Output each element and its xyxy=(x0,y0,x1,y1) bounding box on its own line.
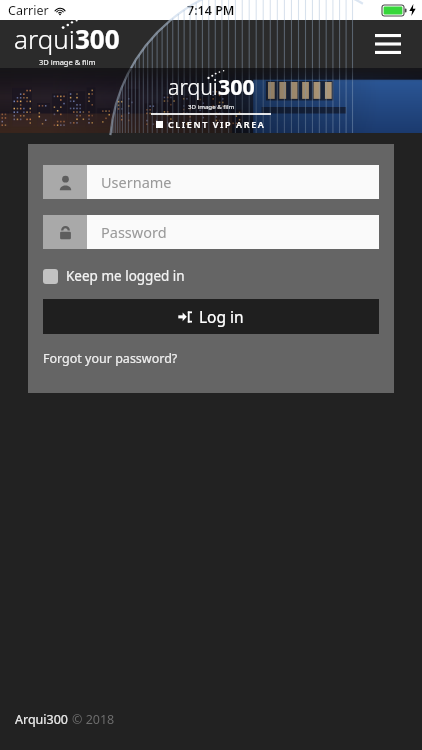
button[interactable]: Log in xyxy=(43,299,379,334)
staticText: 3D image & film xyxy=(39,57,96,67)
button[interactable]: Open menu xyxy=(366,22,410,66)
button[interactable]: Keep me logged in xyxy=(43,267,185,285)
button[interactable]: Forgot your password? xyxy=(43,350,178,367)
staticText: arqui xyxy=(168,72,218,101)
staticText: Keep me logged in xyxy=(66,267,185,285)
staticText: Log in xyxy=(199,306,244,327)
staticText: Username xyxy=(101,172,172,192)
staticText: 3D image & film xyxy=(188,102,235,110)
staticText: 300 xyxy=(218,72,255,101)
staticText: © 2018 xyxy=(72,711,115,728)
button[interactable]: Password xyxy=(43,215,379,249)
staticText: Arqui300 xyxy=(15,711,68,728)
staticText: Carrier xyxy=(8,2,49,19)
staticText: arqui xyxy=(14,21,75,56)
staticText: Forgot your password? xyxy=(43,350,178,367)
staticText: 300 xyxy=(75,21,120,56)
staticText: Password xyxy=(101,222,167,242)
staticText: 7:14 PM xyxy=(187,2,235,19)
staticText: CLIENT VIP AREA xyxy=(168,118,266,130)
button[interactable]: Username xyxy=(43,165,379,199)
